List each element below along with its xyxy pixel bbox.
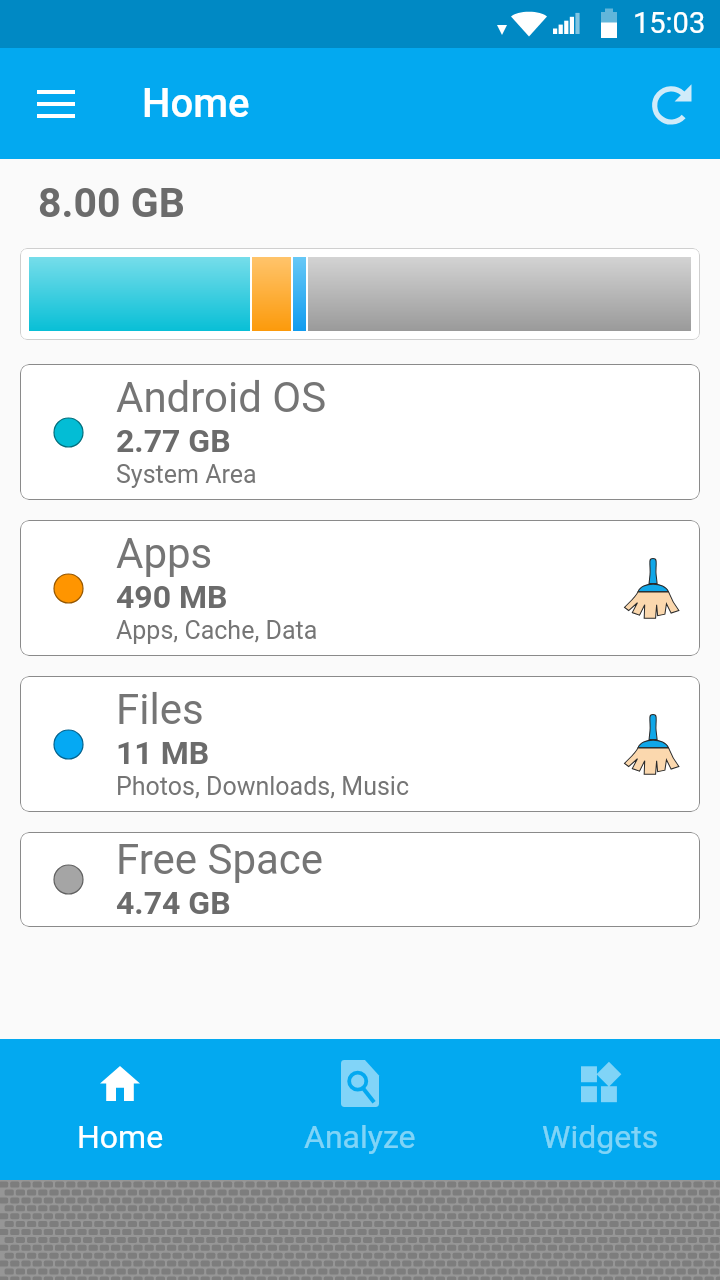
staticText: Widgets <box>542 1118 659 1156</box>
staticText: 4.74 GB <box>116 884 231 922</box>
staticText: 490 MB <box>116 578 228 616</box>
button[interactable]: Android OS <box>20 364 700 500</box>
staticText: Analyze <box>304 1118 416 1156</box>
staticText: 2.77 GB <box>116 422 231 460</box>
staticText: Android OS <box>116 373 327 422</box>
staticText: Files <box>116 685 204 734</box>
button[interactable]: Home <box>0 1039 240 1180</box>
staticText: Photos, Downloads, Music <box>116 772 410 801</box>
staticText: System Area <box>116 460 257 489</box>
staticText: Home <box>142 80 250 127</box>
button[interactable]: Free Space <box>20 832 700 927</box>
staticText: Apps <box>116 529 213 578</box>
button[interactable]: Apps <box>20 520 700 656</box>
staticText: 11 MB <box>116 734 210 772</box>
staticText: 15:03 <box>633 6 706 40</box>
staticText: 8.00 GB <box>38 179 185 227</box>
button[interactable]: Widgets <box>480 1039 720 1180</box>
button[interactable]: Analyze <box>240 1039 480 1180</box>
button[interactable]: Files <box>20 676 700 812</box>
button[interactable]: Menu <box>20 68 92 140</box>
staticText: Home <box>77 1118 164 1156</box>
button[interactable]: Refresh <box>636 66 712 142</box>
staticText: Free Space <box>116 835 324 884</box>
staticText: Apps, Cache, Data <box>116 616 318 645</box>
